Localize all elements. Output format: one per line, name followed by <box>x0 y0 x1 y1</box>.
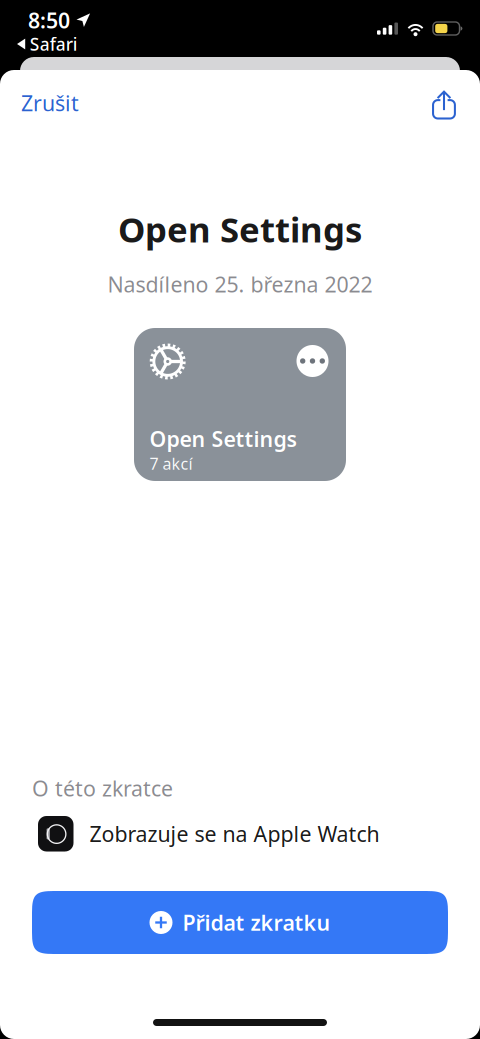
staticText: Open Settings <box>149 424 297 453</box>
staticText: Safari <box>30 32 78 55</box>
staticText: Zrušit <box>21 89 79 117</box>
staticText: 7 akcí <box>149 453 192 474</box>
staticText: Přidat zkratku <box>182 908 330 937</box>
button[interactable]: Přidat zkratku <box>32 891 448 954</box>
staticText: 8:50 <box>28 6 70 34</box>
staticText: Open Settings <box>118 206 362 252</box>
staticText: O této zkratce <box>32 774 173 802</box>
staticText: Zobrazuje se na Apple Watch <box>89 820 379 848</box>
button[interactable]: Sdílet <box>417 83 471 127</box>
button[interactable]: Zrušit <box>0 81 91 125</box>
staticText: Nasdíleno 25. března 2022 <box>107 270 372 298</box>
